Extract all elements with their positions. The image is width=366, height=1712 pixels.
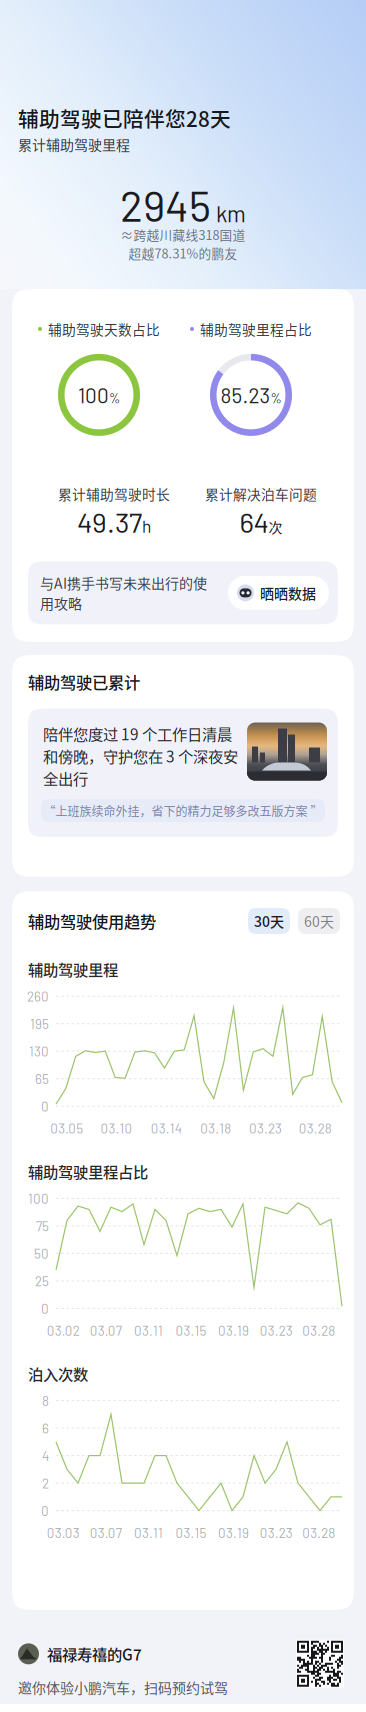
staticText: 0 [41, 1098, 49, 1114]
staticText: 福禄寿禧的G7 [47, 1643, 142, 1665]
staticText: 辅助驾驶已累计 [28, 670, 140, 694]
staticText: 辅助驾驶里程占比 [28, 1160, 148, 1182]
staticText: 与AI携手书写未来出行的使用攻略 [40, 573, 207, 613]
staticText: % [109, 390, 120, 406]
staticText: % [270, 390, 281, 406]
staticText: 03.28 [299, 1120, 332, 1136]
staticText: 2 [42, 1475, 49, 1491]
staticText: 0 [41, 1300, 49, 1316]
button[interactable]: 30天 [248, 908, 290, 934]
staticText: 晒晒数据 [260, 583, 316, 603]
staticText: 100 [28, 1190, 49, 1206]
staticText: 195 [30, 1016, 49, 1032]
staticText: 辅助驾驶天数占比 [48, 319, 160, 339]
staticText: 0 [41, 1503, 49, 1519]
staticText: h [142, 515, 151, 536]
staticText: 260 [27, 988, 49, 1004]
staticText: 次 [268, 516, 282, 537]
staticText: 03.15 [175, 1322, 206, 1338]
staticText: 25 [35, 1273, 49, 1289]
staticText: 泊入次数 [28, 1362, 88, 1385]
staticText: 64 [239, 505, 268, 538]
staticText: km [216, 200, 246, 227]
staticText: 130 [29, 1043, 49, 1059]
staticText: 03.02 [47, 1322, 80, 1338]
staticText: 03.15 [175, 1525, 206, 1541]
staticText: 03.19 [218, 1525, 249, 1541]
staticText: 超越78.31%的鹏友 [128, 244, 237, 262]
staticText: 2945 [120, 179, 211, 230]
staticText: 03.23 [249, 1120, 282, 1136]
staticText: “上班族续命外挂，省下的精力足够多改五版方案 ” [43, 802, 322, 819]
staticText: 03.28 [302, 1322, 335, 1338]
staticText: 8 [42, 1393, 49, 1409]
staticText: 4 [42, 1448, 49, 1464]
staticText: 03.07 [90, 1322, 122, 1338]
staticText: ≈跨越川藏线318国道 [120, 225, 245, 244]
staticText: 03.28 [302, 1525, 335, 1541]
staticText: 03.23 [260, 1322, 293, 1338]
staticText: 03.14 [151, 1120, 182, 1136]
staticText: 辅助驾驶里程 [28, 958, 118, 980]
staticText: 03.18 [200, 1120, 231, 1136]
staticText: 03.23 [260, 1525, 293, 1541]
staticText: 50 [34, 1245, 49, 1261]
staticText: 累计解决泊车问题 [205, 484, 317, 504]
staticText: 60天 [304, 911, 334, 931]
button[interactable]: 晒晒数据 [228, 576, 329, 610]
staticText: 累计辅助驾驶时长 [58, 484, 170, 504]
staticText: 辅助驾驶使用趋势 [28, 909, 156, 933]
staticText: 03.03 [47, 1525, 80, 1541]
staticText: 100 [78, 382, 109, 407]
staticText: 03.11 [134, 1525, 163, 1541]
staticText: 85.23 [220, 382, 270, 407]
staticText: 陪伴您度过 19 个工作日清晨和傍晚，守护您在 3 个深夜安全出行 [43, 723, 238, 789]
staticText: 03.19 [218, 1322, 249, 1338]
staticText: 65 [35, 1071, 49, 1087]
staticText: 03.05 [50, 1120, 83, 1136]
staticText: 累计辅助驾驶里程 [18, 134, 130, 154]
staticText: 邀你体验小鹏汽车，扫码预约试驾 [18, 1677, 228, 1697]
staticText: 辅助驾驶已陪伴您28天 [18, 103, 231, 133]
staticText: 49.37 [77, 505, 142, 538]
staticText: 03.11 [134, 1322, 163, 1338]
staticText: 75 [36, 1218, 49, 1234]
staticText: 03.10 [100, 1120, 132, 1136]
button[interactable]: 60天 [298, 908, 340, 934]
staticText: 03.07 [90, 1525, 122, 1541]
staticText: 6 [42, 1420, 49, 1436]
staticText: 辅助驾驶里程占比 [200, 319, 312, 339]
staticText: 30天 [254, 911, 284, 931]
